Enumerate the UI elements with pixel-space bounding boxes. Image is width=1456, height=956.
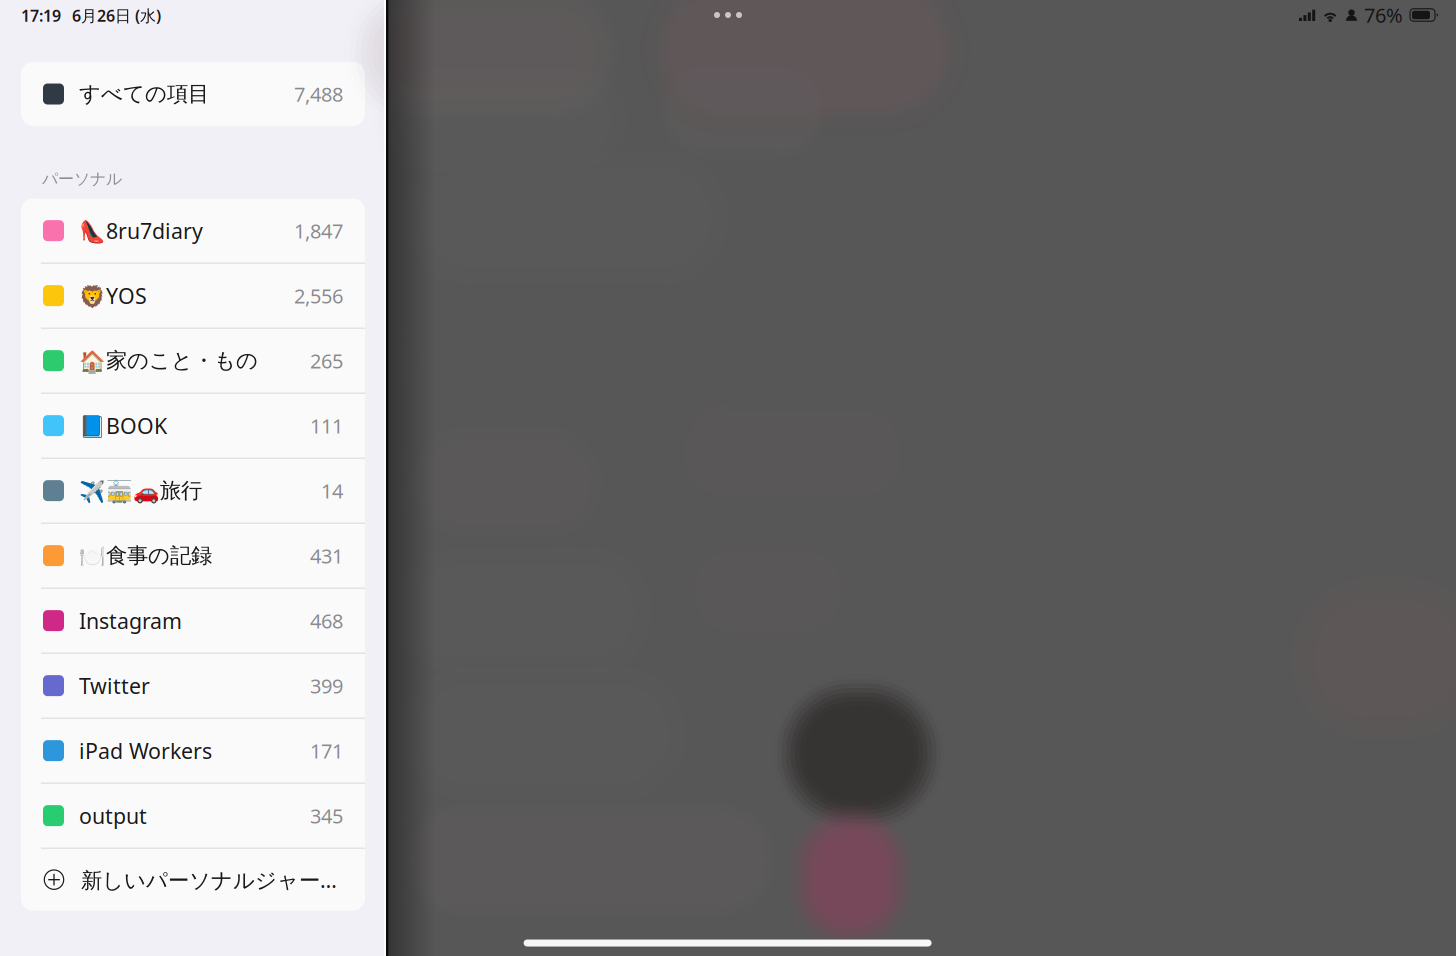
button[interactable]: 🏠家のこと・もの	[21, 329, 365, 393]
staticText: 111	[310, 412, 343, 439]
staticText: 新しいパーソナルジャー…	[81, 865, 337, 894]
button[interactable]: Twitter	[21, 654, 365, 718]
staticText: ✈️🚋🚗旅行	[79, 478, 202, 504]
staticText: 1,847	[294, 217, 343, 244]
staticText: パーソナル	[42, 169, 122, 189]
staticText: 76%	[1364, 2, 1403, 28]
staticText: 171	[310, 737, 343, 764]
staticText: 6月26日 (水)	[72, 5, 161, 26]
staticText: 2,556	[294, 282, 343, 309]
button[interactable]: 📘BOOK	[21, 394, 365, 458]
staticText: 14	[321, 477, 343, 504]
staticText: 7,488	[294, 81, 343, 107]
staticText: すべての項目	[79, 81, 209, 107]
button[interactable]: 新しいパーソナルジャー…	[21, 849, 365, 911]
button[interactable]: Instagram	[21, 589, 365, 653]
staticText: 👠8ru7diary	[79, 216, 203, 245]
staticText: 🍽️食事の記録	[79, 543, 212, 569]
button[interactable]: 👠8ru7diary	[21, 199, 365, 263]
staticText: 468	[310, 607, 343, 634]
button[interactable]: output	[21, 784, 365, 848]
staticText: 399	[310, 672, 343, 699]
staticText: iPad Workers	[79, 736, 212, 765]
button[interactable]: 🦁YOS	[21, 264, 365, 328]
staticText: Instagram	[79, 606, 182, 635]
staticText: 431	[310, 542, 343, 569]
staticText: 🦁YOS	[79, 281, 147, 310]
staticText: 📘BOOK	[79, 411, 167, 440]
staticText: 345	[310, 802, 343, 829]
staticText: 17:19	[21, 5, 61, 26]
button[interactable]: ✈️🚋🚗旅行	[21, 459, 365, 523]
staticText: 265	[310, 347, 343, 374]
button[interactable]: すべての項目	[21, 62, 365, 126]
button[interactable]: iPad Workers	[21, 719, 365, 783]
staticText: output	[79, 801, 147, 830]
staticText: Twitter	[79, 671, 150, 700]
button[interactable]: 🍽️食事の記録	[21, 524, 365, 588]
staticText: 🏠家のこと・もの	[79, 348, 258, 374]
